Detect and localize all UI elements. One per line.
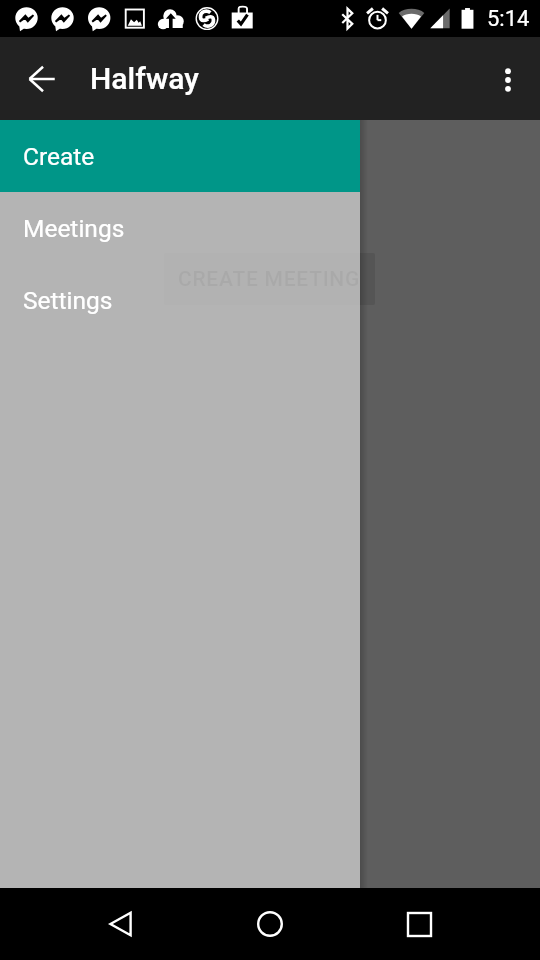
staticText: CREATE MEETING bbox=[178, 267, 361, 292]
button[interactable]: Back bbox=[18, 55, 66, 103]
button[interactable]: Home bbox=[246, 900, 294, 948]
button[interactable]: Create bbox=[0, 120, 360, 192]
button[interactable]: Back bbox=[97, 900, 145, 948]
staticText: Create bbox=[23, 142, 95, 171]
staticText: Settings bbox=[23, 286, 113, 315]
button[interactable]: Meetings bbox=[0, 192, 360, 264]
staticText: Meetings bbox=[23, 214, 125, 243]
staticText: 5:14 bbox=[487, 6, 530, 32]
button[interactable]: More options bbox=[484, 56, 532, 104]
staticText: Halfway bbox=[90, 61, 199, 96]
button[interactable]: CREATE MEETING bbox=[164, 253, 375, 305]
button[interactable]: Recents bbox=[395, 900, 443, 948]
button[interactable]: Settings bbox=[0, 264, 360, 336]
